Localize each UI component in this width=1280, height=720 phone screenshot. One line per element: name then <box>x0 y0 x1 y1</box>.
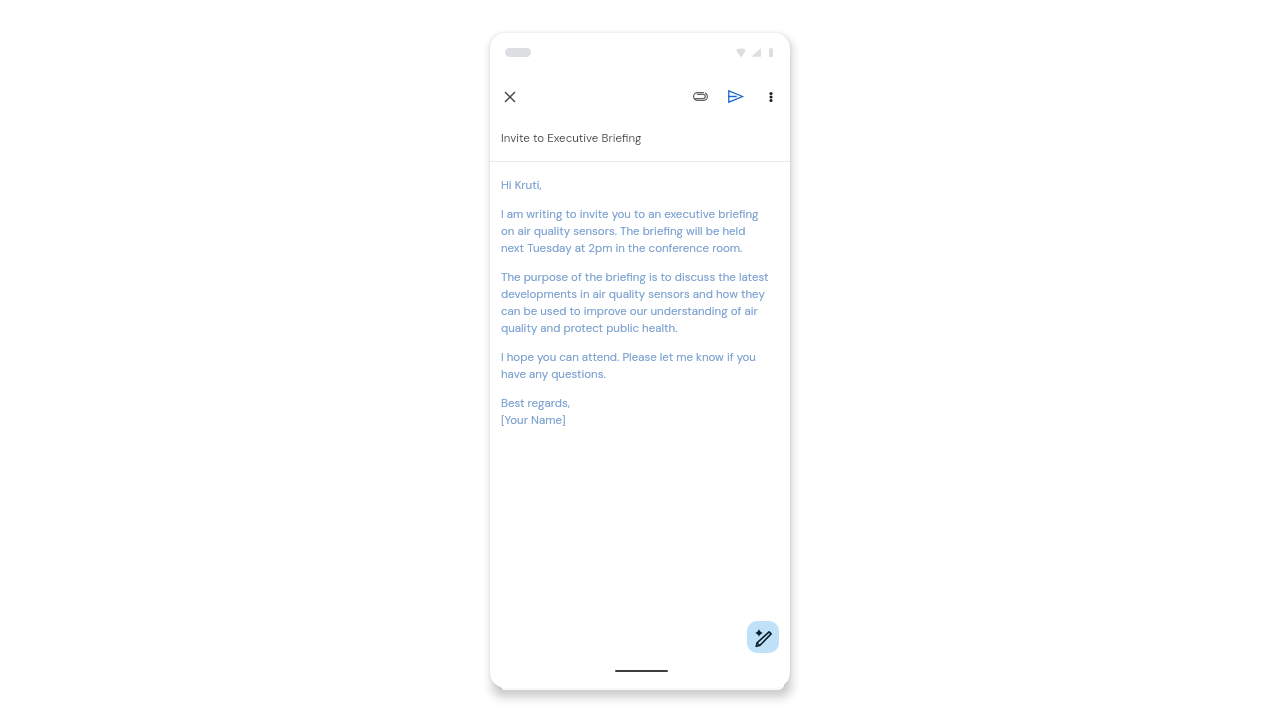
button[interactable]: More options <box>758 84 783 109</box>
staticText: Hi Kruti, <box>501 176 542 193</box>
button[interactable]: Attach file <box>688 84 713 109</box>
staticText: I hope you can attend. Please let me kno… <box>501 348 769 382</box>
staticText: Invite to Executive Briefing <box>501 131 642 146</box>
staticText: I am writing to invite you to an executi… <box>501 205 769 256</box>
button[interactable]: Close <box>497 84 523 110</box>
staticText: Best regards, [Your Name] <box>501 394 570 428</box>
button[interactable]: Help me write <box>747 621 779 653</box>
button[interactable]: Send <box>723 84 748 109</box>
button[interactable]: Hi Kruti, <box>490 176 790 428</box>
staticText: The purpose of the briefing is to discus… <box>501 268 769 336</box>
button[interactable]: Invite to Executive Briefing <box>490 128 790 148</box>
